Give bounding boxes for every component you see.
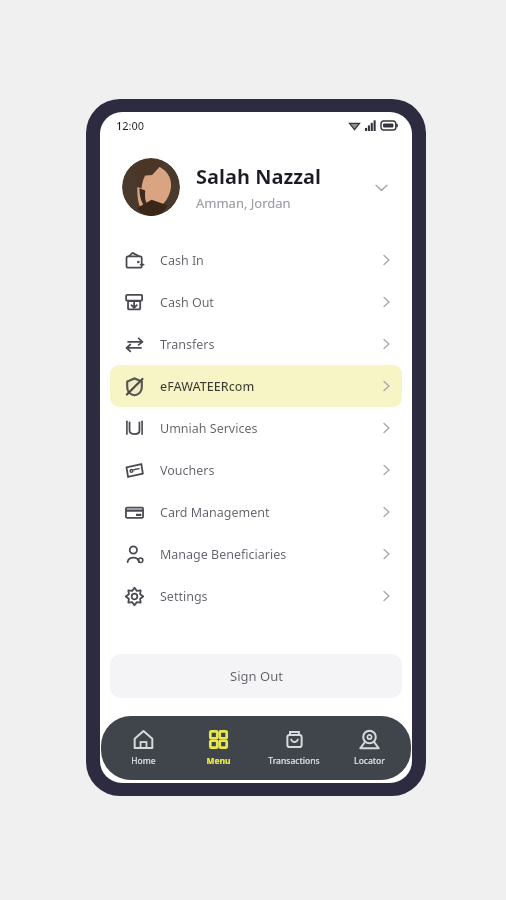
staticText: Umniah Services <box>160 420 383 437</box>
staticText: Transactions <box>268 755 320 767</box>
staticText: Vouchers <box>160 462 383 479</box>
button[interactable]: Transfers <box>110 323 402 365</box>
button[interactable]: Umniah Services <box>110 407 402 449</box>
staticText: Card Management <box>160 504 383 521</box>
staticText: Locator <box>354 755 385 767</box>
button[interactable]: Salah Nazzal <box>100 150 412 224</box>
staticText: Cash In <box>160 252 383 269</box>
button[interactable]: Cash Out <box>110 281 402 323</box>
button[interactable]: Cash In <box>110 239 402 281</box>
button[interactable]: Locator <box>332 716 406 780</box>
staticText: eFAWATEERcom <box>160 378 383 395</box>
button[interactable]: Manage Beneficiaries <box>110 533 402 575</box>
button[interactable]: Card Management <box>110 491 402 533</box>
staticText: 12:00 <box>116 118 145 133</box>
staticText: Amman, Jordan <box>196 194 291 212</box>
button[interactable]: Vouchers <box>110 449 402 491</box>
staticText: Menu <box>206 755 231 767</box>
button[interactable]: Menu <box>181 716 255 780</box>
button[interactable]: Home <box>106 716 180 780</box>
button[interactable]: Transactions <box>257 716 331 780</box>
staticText: Salah Nazzal <box>196 163 322 190</box>
button[interactable]: Settings <box>110 575 402 617</box>
staticText: Manage Beneficiaries <box>160 546 383 563</box>
button[interactable]: eFAWATEERcom <box>110 365 402 407</box>
staticText: Home <box>131 755 156 767</box>
staticText: Transfers <box>160 336 383 353</box>
staticText: Cash Out <box>160 294 383 311</box>
staticText: Sign Out <box>230 667 283 685</box>
button[interactable]: Sign Out <box>110 654 402 698</box>
staticText: Settings <box>160 588 383 605</box>
button[interactable]: Expand profile <box>368 174 394 200</box>
